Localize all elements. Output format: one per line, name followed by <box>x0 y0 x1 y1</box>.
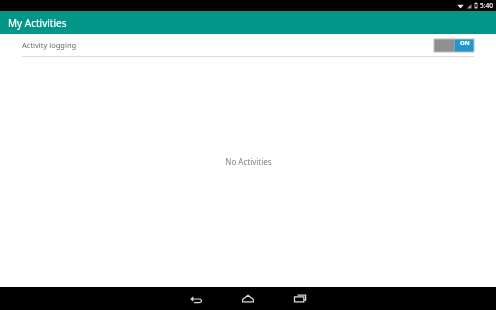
button[interactable]: Recent apps <box>274 287 326 310</box>
button[interactable]: Activity logging toggle, on <box>434 39 474 52</box>
staticText: ON <box>460 39 470 47</box>
staticText: Activity logging <box>22 40 77 50</box>
staticText: No Activities <box>225 156 272 167</box>
staticText: 5:40 <box>480 1 493 10</box>
staticText: My Activities <box>8 16 67 30</box>
button[interactable]: Back <box>170 287 222 310</box>
button[interactable]: Activity logging <box>0 34 496 56</box>
button[interactable]: Home <box>222 287 274 310</box>
